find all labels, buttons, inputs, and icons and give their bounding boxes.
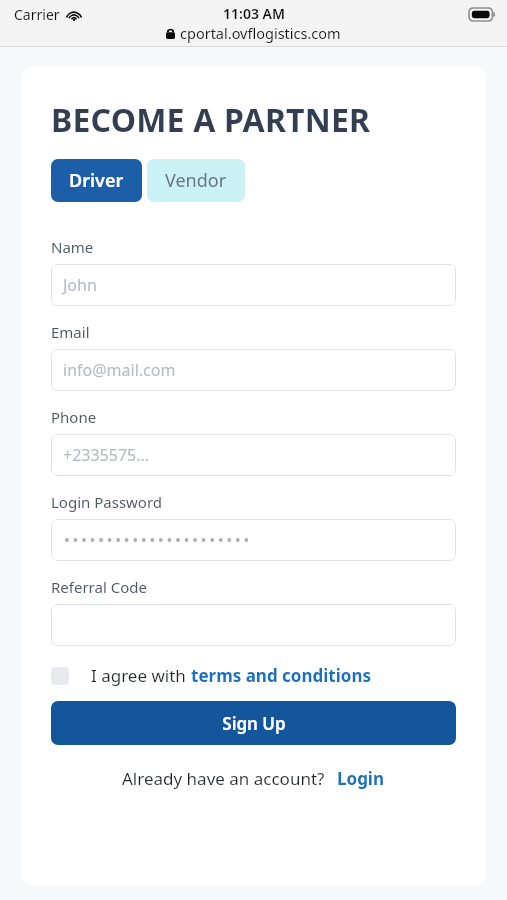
staticText: Vendor bbox=[165, 168, 227, 193]
staticText: Driver bbox=[69, 168, 124, 193]
staticText: Login bbox=[337, 767, 385, 790]
button[interactable]: info@mail.com bbox=[51, 349, 456, 391]
staticText: Referral Code bbox=[51, 577, 147, 597]
staticText: +2335575... bbox=[63, 444, 150, 466]
button[interactable]: terms and conditions bbox=[191, 664, 371, 687]
button[interactable]: +2335575... bbox=[51, 434, 456, 476]
button[interactable]: Sign Up bbox=[51, 701, 456, 745]
button[interactable]: Vendor bbox=[147, 159, 245, 202]
button[interactable] bbox=[51, 604, 456, 646]
button[interactable] bbox=[51, 519, 456, 561]
staticText: Carrier bbox=[14, 5, 60, 24]
button[interactable]: John bbox=[51, 264, 456, 306]
staticText: Phone bbox=[51, 407, 97, 427]
staticText: Login Password bbox=[51, 492, 163, 512]
staticText: 11:03 AM bbox=[223, 4, 285, 23]
staticText: cportal.ovflogistics.com bbox=[180, 23, 341, 43]
staticText: Name bbox=[51, 237, 94, 257]
button[interactable]: Driver bbox=[51, 159, 142, 202]
button[interactable]: Login bbox=[337, 767, 385, 790]
staticText: info@mail.com bbox=[63, 359, 176, 381]
staticText: terms and conditions bbox=[191, 664, 371, 687]
staticText: Email bbox=[51, 322, 90, 342]
staticText: John bbox=[63, 274, 97, 296]
staticText: I agree with bbox=[91, 664, 191, 687]
button[interactable]: Agree to terms and conditions checkbox bbox=[51, 667, 69, 685]
staticText: Sign Up bbox=[222, 712, 286, 735]
staticText: BECOME A PARTNER bbox=[51, 98, 371, 142]
staticText: Already have an account? bbox=[122, 767, 325, 790]
